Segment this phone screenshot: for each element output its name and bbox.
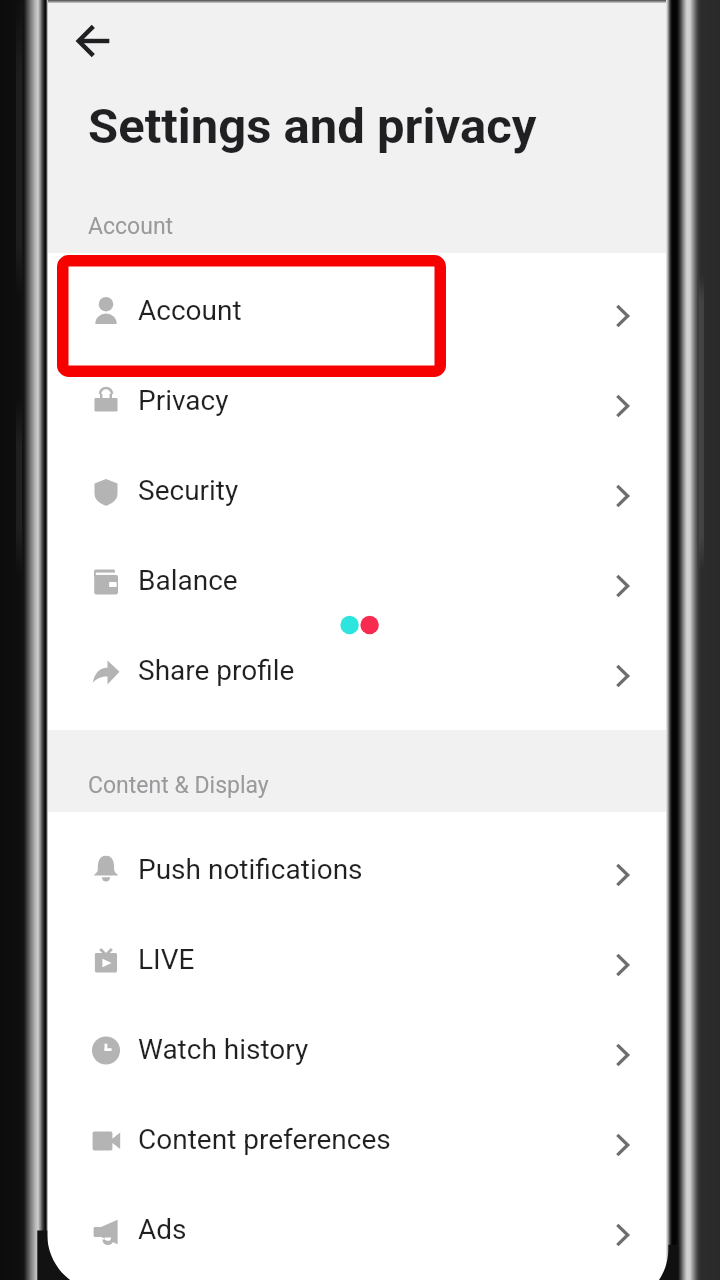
button[interactable]: Account bbox=[48, 265, 672, 355]
button[interactable]: Push notifications bbox=[48, 824, 672, 914]
button[interactable]: Security bbox=[48, 445, 672, 535]
button[interactable]: Watch history bbox=[48, 1004, 672, 1094]
button[interactable]: Back bbox=[66, 13, 122, 69]
staticText: Watch history bbox=[138, 1033, 309, 1066]
staticText: Account bbox=[88, 213, 174, 240]
staticText: Ads bbox=[138, 1213, 187, 1246]
staticText: Account bbox=[138, 294, 242, 327]
staticText: Security bbox=[138, 474, 239, 507]
button[interactable]: Content preferences bbox=[48, 1094, 672, 1184]
staticText: Privacy bbox=[138, 384, 229, 417]
button[interactable]: LIVE bbox=[48, 914, 672, 1004]
button[interactable]: Ads bbox=[48, 1184, 672, 1274]
staticText: Share profile bbox=[138, 654, 295, 687]
staticText: LIVE bbox=[138, 943, 195, 976]
staticText: Settings and privacy bbox=[88, 98, 537, 155]
staticText: Content preferences bbox=[138, 1123, 391, 1156]
staticText: Content & Display bbox=[88, 772, 269, 799]
button[interactable]: Balance bbox=[48, 535, 672, 625]
staticText: Push notifications bbox=[138, 853, 363, 886]
button[interactable]: Privacy bbox=[48, 355, 672, 445]
button[interactable]: Share profile bbox=[48, 625, 672, 715]
staticText: Balance bbox=[138, 564, 238, 597]
